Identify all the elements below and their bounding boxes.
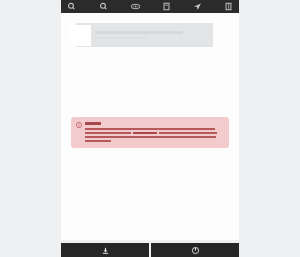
button[interactable]: Download bbox=[61, 243, 149, 257]
button[interactable]: Power bbox=[151, 243, 239, 257]
button[interactable]: Search bbox=[65, 0, 78, 13]
button[interactable]: Copy bbox=[160, 0, 173, 13]
button[interactable]: Print bbox=[222, 0, 235, 13]
button[interactable]: Zoom bbox=[97, 0, 110, 13]
button[interactable]: Send bbox=[191, 0, 204, 13]
button[interactable]: Page size bbox=[129, 0, 142, 13]
button[interactable] bbox=[76, 23, 213, 47]
button[interactable] bbox=[71, 117, 229, 148]
